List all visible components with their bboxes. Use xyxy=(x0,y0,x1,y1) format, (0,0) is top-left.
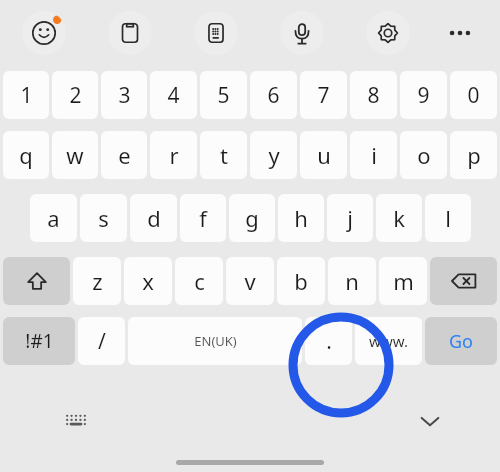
staticText: z xyxy=(92,266,103,296)
staticText: n xyxy=(345,266,359,296)
staticText: 8 xyxy=(367,81,380,110)
button[interactable]: 5 xyxy=(200,71,247,119)
button[interactable]: Backspace xyxy=(430,257,497,305)
button[interactable]: 7 xyxy=(300,71,347,119)
button[interactable]: y xyxy=(250,131,297,179)
staticText: u xyxy=(317,140,331,170)
button[interactable]: 4 xyxy=(150,71,197,119)
staticText: t xyxy=(220,140,228,170)
button[interactable]: o xyxy=(400,131,447,179)
staticText: w xyxy=(66,140,84,170)
button[interactable]: . xyxy=(305,317,352,365)
button[interactable]: p xyxy=(450,131,497,179)
button[interactable]: l xyxy=(425,194,471,242)
button[interactable]: k xyxy=(376,194,422,242)
staticText: h xyxy=(294,203,308,233)
button[interactable]: v xyxy=(226,257,274,305)
staticText: 5 xyxy=(217,81,230,110)
staticText: y xyxy=(268,140,280,170)
button[interactable]: q xyxy=(3,131,49,179)
staticText: !#1 xyxy=(25,328,54,354)
staticText: p xyxy=(467,140,481,170)
button[interactable]: 2 xyxy=(52,71,98,119)
staticText: www. xyxy=(369,331,408,351)
staticText: 7 xyxy=(317,81,330,110)
staticText: EN(UK) xyxy=(194,332,237,350)
button[interactable]: c xyxy=(175,257,223,305)
button[interactable]: g xyxy=(229,194,275,242)
button[interactable]: Emoji xyxy=(22,11,66,55)
staticText: 2 xyxy=(69,81,82,110)
button[interactable]: Shift xyxy=(3,257,70,305)
button[interactable]: More options xyxy=(438,11,482,55)
button[interactable]: Clipboard xyxy=(108,11,152,55)
button[interactable]: b xyxy=(277,257,325,305)
staticText: b xyxy=(294,266,308,296)
staticText: d xyxy=(147,203,161,233)
button[interactable]: Space xyxy=(128,317,302,365)
staticText: s xyxy=(98,203,109,233)
button[interactable]: a xyxy=(30,194,77,242)
button[interactable]: Switch keyboard xyxy=(58,403,94,439)
button[interactable]: Text shortcuts xyxy=(194,11,238,55)
button[interactable]: / xyxy=(78,317,125,365)
button[interactable]: h xyxy=(278,194,324,242)
button[interactable]: e xyxy=(101,131,147,179)
button[interactable]: t xyxy=(200,131,247,179)
staticText: e xyxy=(118,140,131,170)
button[interactable]: www. xyxy=(355,317,422,365)
button[interactable]: x xyxy=(124,257,172,305)
staticText: 6 xyxy=(267,81,280,110)
button[interactable]: d xyxy=(130,194,177,242)
button[interactable]: w xyxy=(52,131,98,179)
button[interactable]: r xyxy=(150,131,197,179)
staticText: 0 xyxy=(467,81,480,110)
staticText: x xyxy=(142,266,154,296)
staticText: f xyxy=(199,203,207,233)
button[interactable]: 1 xyxy=(3,71,49,119)
staticText: 4 xyxy=(167,81,180,110)
button[interactable]: Settings xyxy=(366,11,410,55)
button[interactable]: z xyxy=(73,257,121,305)
staticText: l xyxy=(445,203,451,233)
button[interactable]: 0 xyxy=(450,71,497,119)
staticText: j xyxy=(347,203,353,233)
staticText: Go xyxy=(449,329,473,354)
button[interactable]: Hide keyboard xyxy=(410,401,450,441)
button[interactable]: n xyxy=(328,257,376,305)
button[interactable]: i xyxy=(350,131,397,179)
button[interactable]: m xyxy=(379,257,427,305)
staticText: 3 xyxy=(118,81,131,110)
button[interactable]: f xyxy=(180,194,226,242)
button[interactable]: 3 xyxy=(101,71,147,119)
button[interactable]: 6 xyxy=(250,71,297,119)
button[interactable]: s xyxy=(80,194,127,242)
button[interactable]: !#1 xyxy=(3,317,75,365)
staticText: 1 xyxy=(20,81,33,110)
button[interactable]: 9 xyxy=(400,71,447,119)
button[interactable]: j xyxy=(327,194,373,242)
staticText: c xyxy=(194,266,205,296)
staticText: . xyxy=(326,327,332,356)
staticText: a xyxy=(47,203,60,233)
button[interactable]: 8 xyxy=(350,71,397,119)
button[interactable]: Voice input xyxy=(280,11,324,55)
staticText: o xyxy=(417,140,431,170)
staticText: i xyxy=(371,140,377,170)
button[interactable]: u xyxy=(300,131,347,179)
staticText: g xyxy=(245,203,259,233)
staticText: k xyxy=(393,203,405,233)
button[interactable]: Go xyxy=(425,317,497,365)
staticText: r xyxy=(169,140,179,170)
staticText: q xyxy=(19,140,33,170)
staticText: 9 xyxy=(417,81,430,110)
staticText: v xyxy=(244,266,256,296)
staticText: / xyxy=(98,327,106,356)
staticText: m xyxy=(393,266,414,296)
